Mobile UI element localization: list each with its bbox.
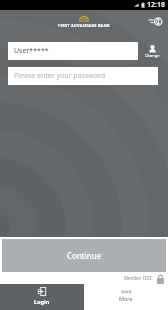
staticText: More: [119, 295, 133, 302]
button[interactable]: Change: [138, 40, 167, 62]
staticText: Change: [145, 53, 160, 58]
staticText: Please enter your password: [14, 71, 106, 81]
staticText: Member FDIC: [124, 275, 153, 281]
button[interactable]: Please enter your password: [8, 67, 158, 85]
staticText: User*****: [14, 46, 49, 56]
staticText: 12:18: [147, 0, 165, 10]
button[interactable]: More: [84, 284, 168, 310]
button[interactable]: Rates: [140, 10, 168, 33]
staticText: Continue: [67, 250, 102, 261]
button[interactable]: Login: [0, 284, 84, 310]
staticText: FIRST ADVANTAGE BANK: [58, 23, 110, 28]
button[interactable]: User*****: [8, 42, 138, 60]
button[interactable]: Continue: [2, 239, 166, 272]
staticText: Login: [34, 298, 50, 305]
